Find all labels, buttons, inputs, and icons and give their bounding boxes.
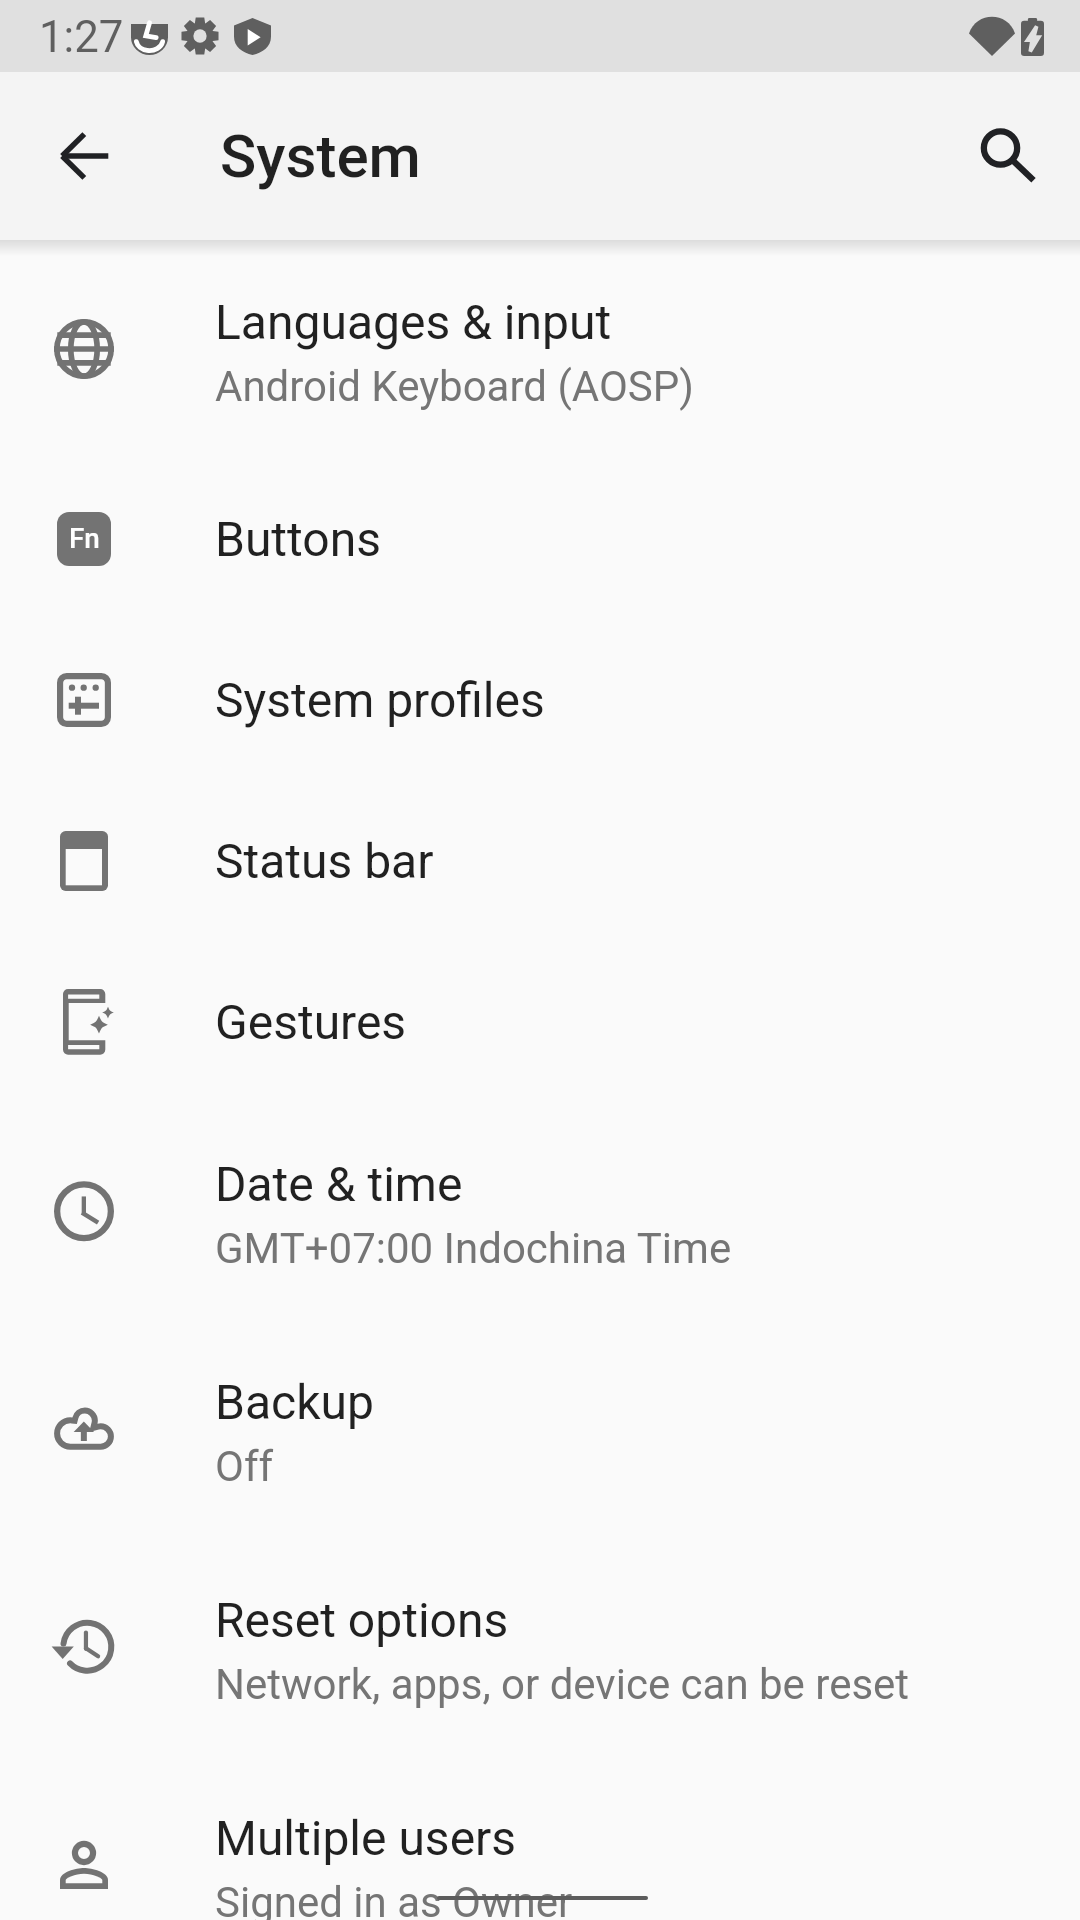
button[interactable]: Search (936, 84, 1080, 228)
staticText: Gestures (215, 994, 407, 1050)
staticText: Date & time (215, 1156, 463, 1212)
staticText: 1:27 (39, 11, 124, 62)
button[interactable]: Date & time (0, 1102, 1080, 1320)
button[interactable]: Gestures (0, 941, 1080, 1102)
button[interactable]: System profiles (0, 619, 1080, 780)
staticText: Backup (215, 1374, 374, 1430)
button[interactable]: Reset options (0, 1538, 1080, 1756)
button[interactable]: Back (12, 84, 156, 228)
button[interactable]: Backup (0, 1320, 1080, 1538)
staticText: System (220, 121, 421, 191)
staticText: Network, apps, or device can be reset (215, 1660, 910, 1709)
staticText: Multiple users (215, 1810, 517, 1866)
staticText: GMT+07:00 Indochina Time (215, 1224, 732, 1273)
button[interactable]: Fn (0, 458, 1080, 619)
button[interactable]: Status bar (0, 780, 1080, 941)
button[interactable]: Languages & input (0, 240, 1080, 458)
staticText: Fn (69, 522, 100, 555)
staticText: Status bar (215, 833, 434, 889)
button[interactable]: Multiple users (0, 1756, 1080, 1920)
staticText: Android Keyboard (AOSP) (215, 362, 694, 411)
staticText: System profiles (215, 672, 545, 728)
staticText: Signed in as Owner (215, 1878, 573, 1920)
staticText: Buttons (215, 511, 381, 567)
staticText: Languages & input (215, 294, 612, 350)
staticText: Reset options (215, 1592, 509, 1648)
staticText: Off (215, 1442, 274, 1491)
